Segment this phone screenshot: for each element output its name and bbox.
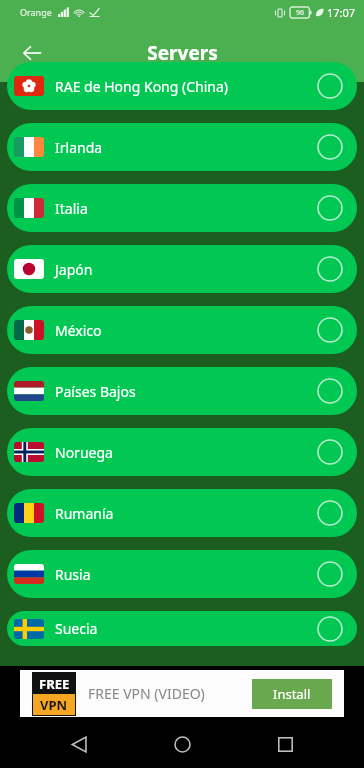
staticText: México xyxy=(55,321,317,340)
button[interactable]: Italia xyxy=(7,184,357,232)
button[interactable]: Rusia xyxy=(7,550,357,598)
staticText: Noruega xyxy=(55,443,317,462)
button[interactable]: Home xyxy=(158,720,206,768)
staticText: Orange xyxy=(20,6,52,18)
button[interactable]: Back xyxy=(55,720,103,768)
button[interactable]: Recent apps xyxy=(261,720,309,768)
button[interactable]: Países Bajos xyxy=(7,367,357,415)
button[interactable]: Rumanía xyxy=(7,489,357,537)
staticText: Install xyxy=(273,685,311,703)
staticText: Rumanía xyxy=(55,504,317,523)
staticText: Japón xyxy=(55,260,317,279)
button[interactable]: Back xyxy=(10,31,54,75)
button[interactable]: Japón xyxy=(7,245,357,293)
staticText: RAE de Hong Kong (China) xyxy=(55,77,317,96)
staticText: 96 xyxy=(296,8,305,18)
button[interactable]: Install xyxy=(252,679,332,709)
staticText: Rusia xyxy=(55,565,317,584)
staticText: Irlanda xyxy=(55,138,317,157)
staticText: FREE VPN (VIDEO) xyxy=(88,684,252,703)
button[interactable]: Noruega xyxy=(7,428,357,476)
staticText: Suecia xyxy=(55,619,317,638)
button[interactable]: RAE de Hong Kong (China) xyxy=(7,62,357,110)
button[interactable]: Irlanda xyxy=(7,123,357,171)
button[interactable]: FREE xyxy=(20,670,344,717)
staticText: VPN xyxy=(40,696,68,714)
staticText: Países Bajos xyxy=(55,382,317,401)
button[interactable]: Suecia xyxy=(7,611,357,646)
staticText: Servers xyxy=(147,40,218,66)
button[interactable]: México xyxy=(7,306,357,354)
staticText: Italia xyxy=(55,199,317,218)
staticText: 17:07 xyxy=(327,5,356,20)
staticText: FREE xyxy=(39,675,70,693)
